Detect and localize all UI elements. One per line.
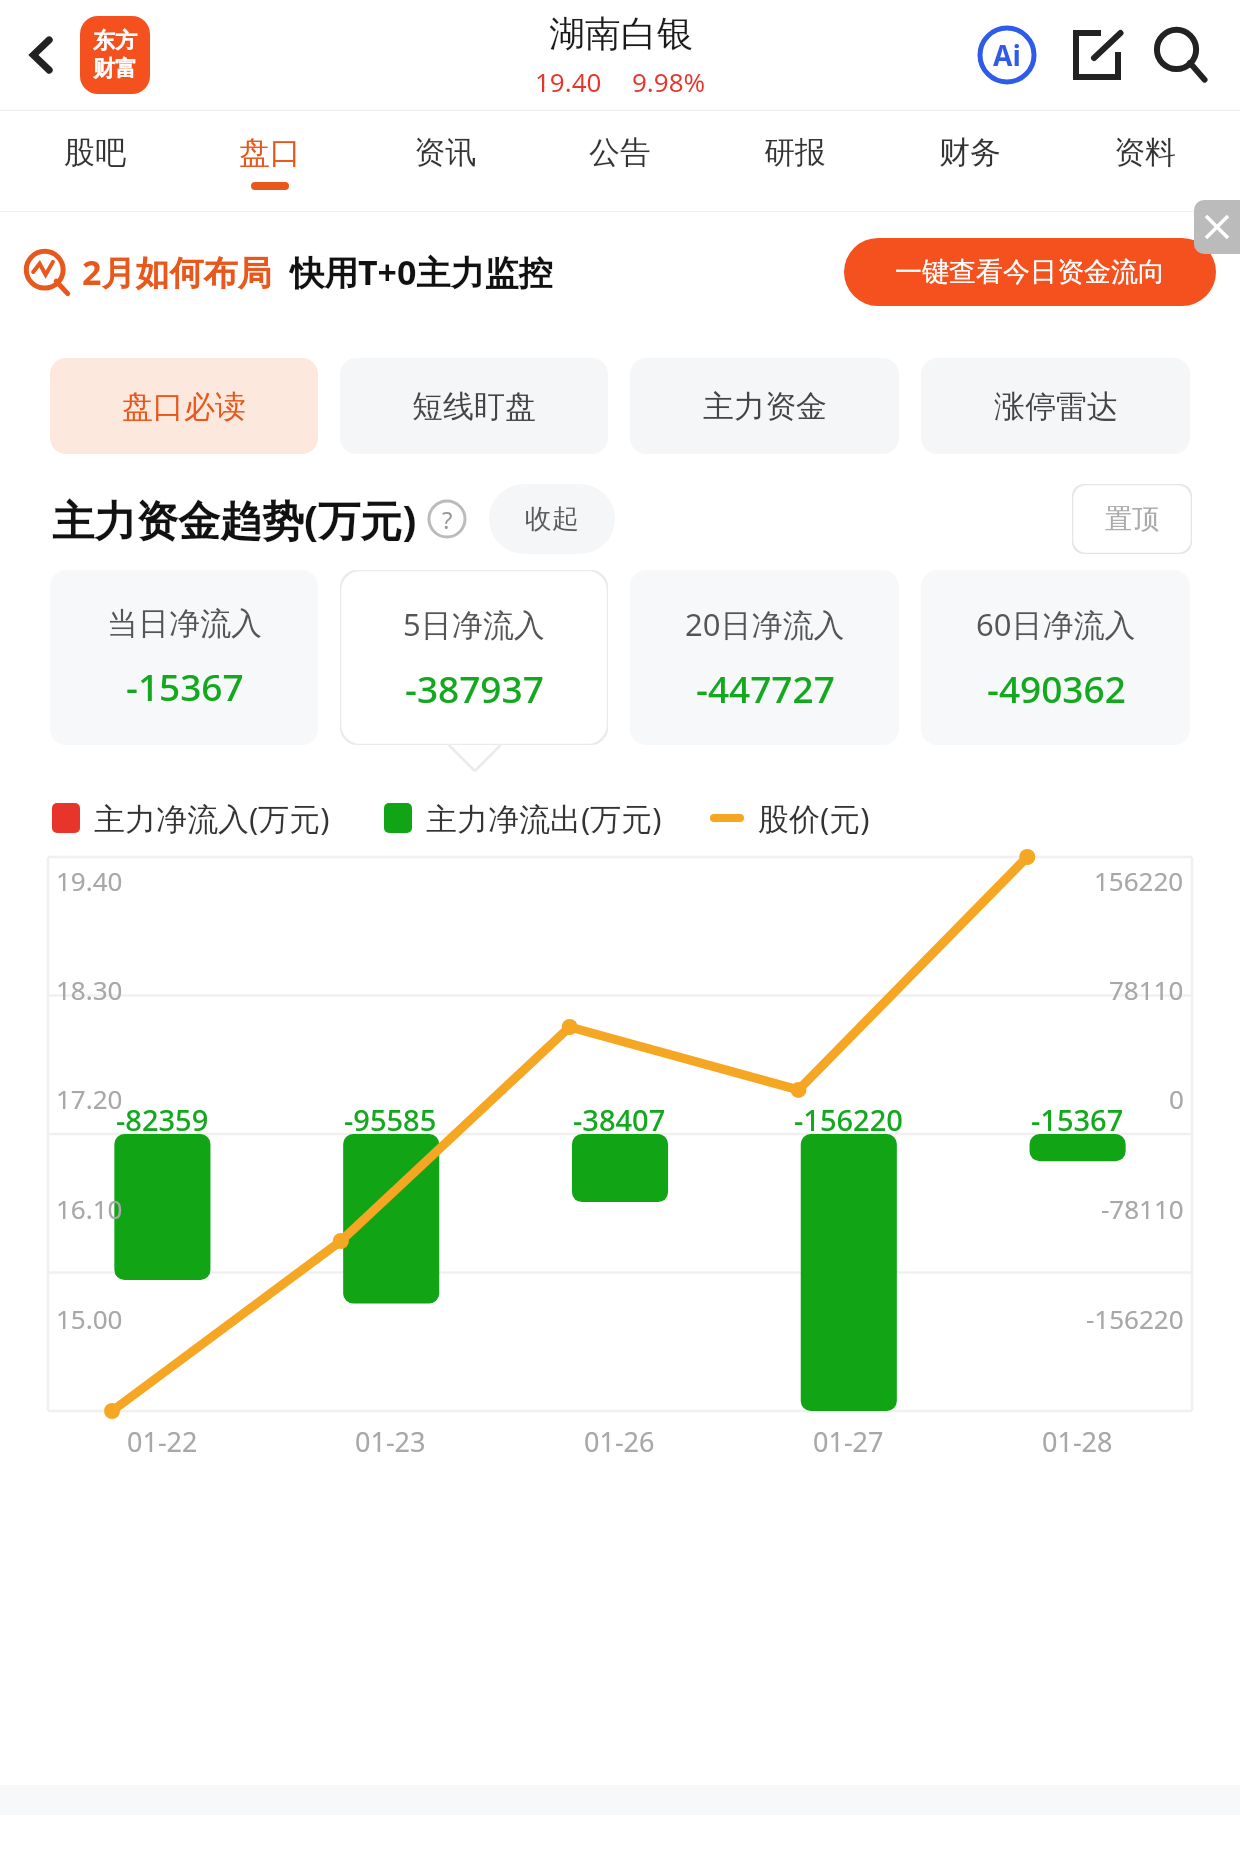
staticText: 18.30 (56, 972, 123, 1007)
button[interactable]: 股吧 (8, 111, 182, 211)
button[interactable]: 置顶 (1072, 484, 1192, 554)
staticText: 一键查看今日资金流向 (895, 255, 1165, 289)
button[interactable]: Close (1194, 200, 1240, 254)
staticText: 当日净流入 (107, 604, 262, 643)
button[interactable]: 资讯 (357, 111, 532, 211)
staticText: 5日净流入 (403, 603, 545, 645)
staticText: 盘口 (239, 133, 301, 172)
staticText: 19.40 (56, 863, 123, 898)
staticText: -490362 (987, 663, 1126, 713)
staticText: 01-22 (127, 1423, 198, 1460)
staticText: 资讯 (414, 133, 476, 172)
staticText: 东方 (93, 27, 137, 55)
staticText: 收起 (525, 502, 579, 536)
staticText: 2月如何布局 (82, 249, 272, 295)
staticText: 湖南白银 (549, 11, 693, 56)
staticText: 01-27 (813, 1423, 884, 1460)
button[interactable]: 财务 (882, 111, 1057, 211)
staticText: 9.98% (632, 64, 706, 99)
button[interactable]: 涨停雷达 (921, 358, 1190, 454)
button[interactable]: 60日净流入 (921, 570, 1190, 745)
staticText: 财务 (939, 133, 1001, 172)
staticText: -156220 (794, 1100, 903, 1139)
staticText: 公告 (589, 133, 651, 172)
button[interactable]: 盘口必读 (50, 358, 318, 454)
button[interactable]: 短线盯盘 (340, 358, 608, 454)
staticText: 19.40 (535, 64, 602, 99)
staticText: -447727 (696, 663, 835, 713)
button[interactable]: 资料 (1057, 111, 1232, 211)
staticText: 财富 (93, 55, 137, 83)
button[interactable]: 20日净流入 (630, 570, 899, 745)
button[interactable]: 一键查看今日资金流向 (844, 238, 1216, 306)
staticText: -15367 (1031, 1100, 1124, 1139)
button[interactable]: 公告 (532, 111, 707, 211)
staticText: 20日净流入 (685, 603, 845, 645)
button[interactable]: 研报 (707, 111, 882, 211)
staticText: ? (442, 503, 453, 536)
button[interactable]: 盘口 (182, 111, 357, 211)
button[interactable]: 主力资金 (630, 358, 899, 454)
staticText: 01-26 (584, 1423, 655, 1460)
staticText: 股价(元) (758, 797, 870, 839)
staticText: 60日净流入 (976, 603, 1136, 645)
staticText: -156220 (1086, 1301, 1184, 1336)
staticText: 盘口必读 (122, 387, 246, 426)
staticText: 短线盯盘 (412, 387, 536, 426)
staticText: 156220 (1094, 863, 1184, 898)
staticText: 0 (1169, 1081, 1184, 1116)
staticText: -82359 (116, 1100, 209, 1139)
staticText: 资料 (1114, 133, 1176, 172)
staticText: -387937 (405, 663, 544, 713)
button[interactable]: Search (1146, 20, 1216, 90)
staticText: 16.10 (56, 1191, 123, 1226)
staticText: 17.20 (56, 1081, 123, 1116)
staticText: 主力净流出(万元) (426, 797, 662, 839)
button[interactable]: 当日净流入 (50, 570, 318, 745)
staticText: 01-28 (1042, 1423, 1113, 1460)
staticText: 置顶 (1105, 502, 1159, 536)
staticText: 研报 (764, 133, 826, 172)
button[interactable]: Share (1062, 20, 1132, 90)
staticText: -38407 (573, 1100, 666, 1139)
staticText: 涨停雷达 (994, 387, 1118, 426)
staticText: 主力净流入(万元) (94, 797, 330, 839)
button[interactable]: AI assistant (972, 20, 1042, 90)
staticText: -15367 (126, 661, 244, 711)
staticText: 78110 (1109, 972, 1184, 1007)
staticText: Ai (993, 36, 1021, 74)
staticText: 主力资金趋势(万元) (52, 491, 417, 548)
button[interactable]: 5日净流入 (340, 570, 608, 745)
button[interactable]: 东方 (80, 16, 150, 94)
button[interactable]: Back (12, 25, 72, 85)
staticText: -78110 (1101, 1191, 1184, 1226)
button[interactable]: 收起 (489, 484, 615, 554)
staticText: 股吧 (64, 133, 126, 172)
staticText: 01-23 (355, 1423, 426, 1460)
staticText: 快用T+0主力监控 (290, 249, 553, 295)
staticText: -95585 (344, 1100, 437, 1139)
staticText: 主力资金 (703, 387, 827, 426)
button[interactable]: Help (425, 497, 469, 541)
staticText: 15.00 (56, 1301, 123, 1336)
